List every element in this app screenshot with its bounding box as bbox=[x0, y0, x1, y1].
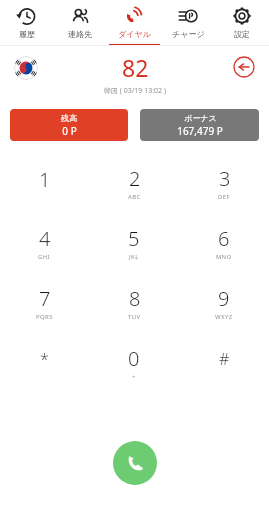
staticText: 6 bbox=[218, 225, 230, 252]
staticText: 9 bbox=[218, 285, 230, 312]
staticText: 7 bbox=[39, 285, 51, 312]
staticText: + bbox=[132, 373, 136, 381]
staticText: ダイヤル bbox=[118, 29, 151, 39]
button[interactable]: 0 bbox=[89, 333, 179, 393]
button[interactable]: 1 bbox=[0, 153, 89, 213]
staticText: JKL bbox=[129, 253, 139, 261]
staticText: 履歴 bbox=[19, 29, 35, 39]
staticText: 0 bbox=[128, 345, 140, 372]
button[interactable]: 6 bbox=[179, 213, 269, 273]
staticText: # bbox=[219, 348, 230, 370]
staticText: 1 bbox=[39, 166, 51, 193]
button[interactable]: 4 bbox=[0, 213, 89, 273]
staticText: MNO bbox=[216, 253, 232, 261]
staticText: 8 bbox=[129, 285, 141, 312]
button[interactable]: 8 bbox=[89, 273, 179, 333]
staticText: 残高 bbox=[61, 113, 77, 123]
staticText: 5 bbox=[128, 225, 140, 252]
staticText: WXYZ bbox=[215, 313, 233, 321]
button[interactable]: 残高 bbox=[10, 109, 128, 141]
button[interactable]: 9 bbox=[179, 273, 269, 333]
button[interactable]: Back bbox=[233, 56, 255, 78]
staticText: TUV bbox=[128, 313, 141, 321]
button[interactable]: 履歴 bbox=[0, 0, 53, 46]
staticText: 82 bbox=[122, 52, 149, 83]
staticText: 3 bbox=[219, 165, 231, 192]
staticText: チャージ bbox=[172, 29, 205, 39]
staticText: 4 bbox=[39, 225, 51, 252]
button[interactable]: 2 bbox=[89, 153, 179, 213]
staticText: GHI bbox=[38, 253, 51, 261]
staticText: ABC bbox=[128, 193, 141, 201]
button[interactable]: ダイヤル bbox=[107, 0, 161, 46]
staticText: PQRS bbox=[36, 313, 53, 321]
button[interactable]: # bbox=[179, 333, 269, 393]
staticText: ボーナス bbox=[184, 113, 217, 123]
staticText: 韓国 ( 03/19 13:02 ) bbox=[104, 86, 166, 96]
button[interactable]: ボーナス bbox=[140, 109, 259, 141]
staticText: DEF bbox=[218, 193, 231, 201]
button[interactable]: Country: Korea bbox=[14, 56, 38, 80]
staticText: * bbox=[40, 348, 49, 370]
staticText: 2 bbox=[129, 165, 141, 192]
staticText: 設定 bbox=[234, 29, 250, 39]
button[interactable]: チャージ bbox=[161, 0, 215, 46]
staticText: 0 P bbox=[62, 124, 77, 138]
button[interactable]: Call bbox=[113, 441, 157, 485]
button[interactable]: * bbox=[0, 333, 89, 393]
button[interactable]: 3 bbox=[179, 153, 269, 213]
button[interactable]: 連絡先 bbox=[53, 0, 107, 46]
button[interactable]: 7 bbox=[0, 273, 89, 333]
button[interactable]: 設定 bbox=[215, 0, 269, 46]
staticText: 167,479 P bbox=[177, 124, 223, 138]
staticText: 連絡先 bbox=[68, 29, 92, 39]
button[interactable]: 5 bbox=[89, 213, 179, 273]
